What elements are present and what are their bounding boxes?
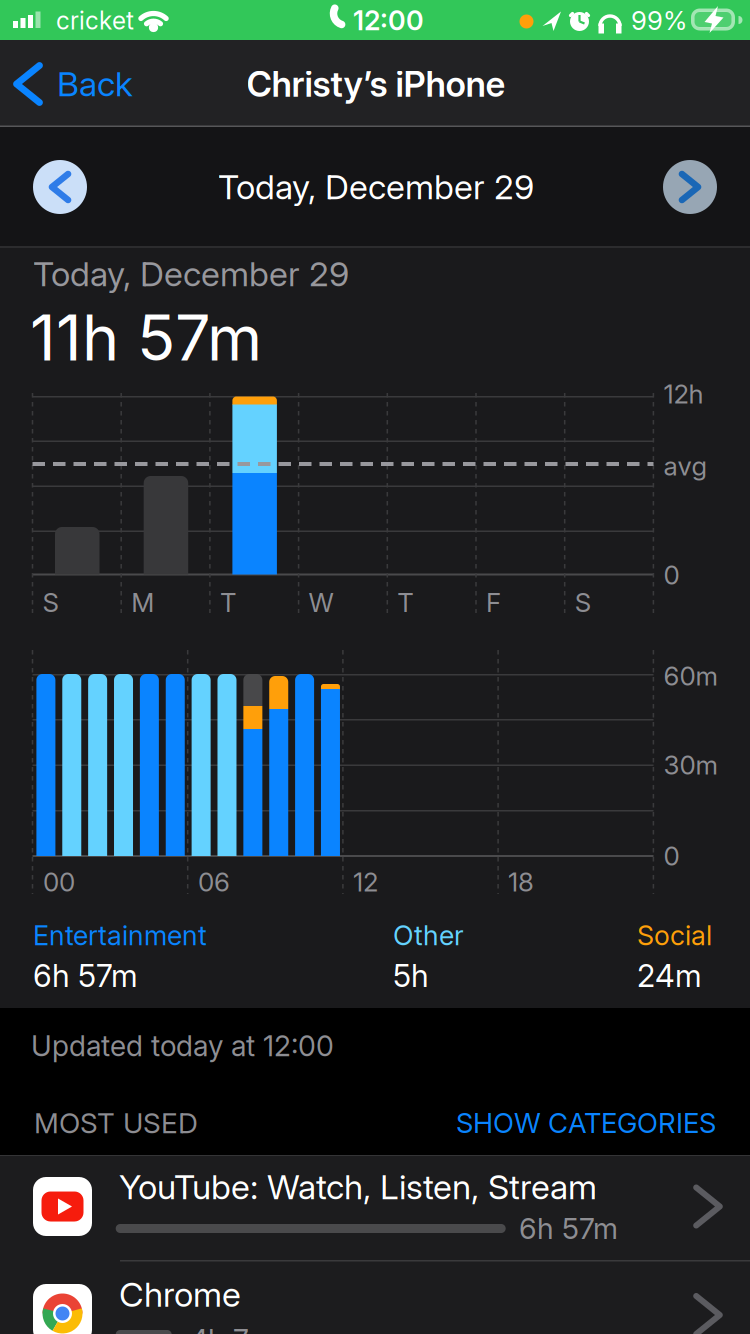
staticText: Social bbox=[637, 919, 712, 951]
staticText: Entertainment bbox=[33, 919, 207, 951]
staticText: cricket bbox=[56, 6, 134, 35]
staticText: 6h 57m bbox=[33, 957, 138, 994]
staticText: MOST USED bbox=[34, 1106, 198, 1139]
staticText: YouTube: Watch, Listen, Stream bbox=[119, 1167, 597, 1207]
staticText: Today, December 29 bbox=[33, 254, 349, 294]
staticText: 00 bbox=[43, 867, 75, 897]
button[interactable]: Next Day bbox=[663, 160, 717, 214]
staticText: 24m bbox=[637, 957, 702, 994]
staticText: 30m bbox=[663, 750, 717, 780]
staticText: M bbox=[131, 587, 154, 618]
staticText: 4h 7m bbox=[190, 1322, 272, 1334]
staticText: 99% bbox=[631, 5, 687, 36]
staticText: 11h 57m bbox=[30, 300, 262, 375]
staticText: Today, December 29 bbox=[218, 167, 534, 207]
staticText: 12 bbox=[353, 867, 378, 897]
staticText: Christy’s iPhone bbox=[246, 63, 505, 105]
staticText: 18 bbox=[508, 867, 534, 897]
button[interactable]: Previous Day bbox=[33, 160, 87, 214]
staticText: W bbox=[309, 587, 334, 618]
staticText: 0 bbox=[663, 841, 679, 871]
staticText: Chrome bbox=[119, 1274, 241, 1314]
staticText: 12h bbox=[663, 379, 703, 409]
staticText: T bbox=[220, 587, 237, 618]
button[interactable]: YouTube: Watch, Listen, Stream bbox=[0, 1156, 750, 1261]
staticText: 6h 57m bbox=[519, 1211, 618, 1246]
staticText: S bbox=[42, 587, 58, 618]
staticText: Other bbox=[393, 919, 464, 951]
staticText: 06 bbox=[198, 867, 230, 897]
button[interactable]: Back bbox=[8, 49, 148, 119]
staticText: T bbox=[397, 587, 414, 618]
staticText: Updated today at 12:00 bbox=[31, 1029, 334, 1063]
staticText: 12:00 bbox=[353, 5, 424, 36]
staticText: 0 bbox=[663, 560, 679, 590]
staticText: S bbox=[575, 587, 591, 618]
button[interactable]: Chrome bbox=[0, 1261, 750, 1334]
staticText: F bbox=[486, 587, 501, 618]
staticText: 5h bbox=[393, 957, 429, 994]
staticText: Back bbox=[57, 64, 133, 104]
staticText: 60m bbox=[663, 661, 717, 691]
staticText: avg bbox=[663, 451, 707, 481]
button[interactable]: SHOW CATEGORIES bbox=[266, 1107, 716, 1139]
staticText: SHOW CATEGORIES bbox=[456, 1107, 716, 1139]
